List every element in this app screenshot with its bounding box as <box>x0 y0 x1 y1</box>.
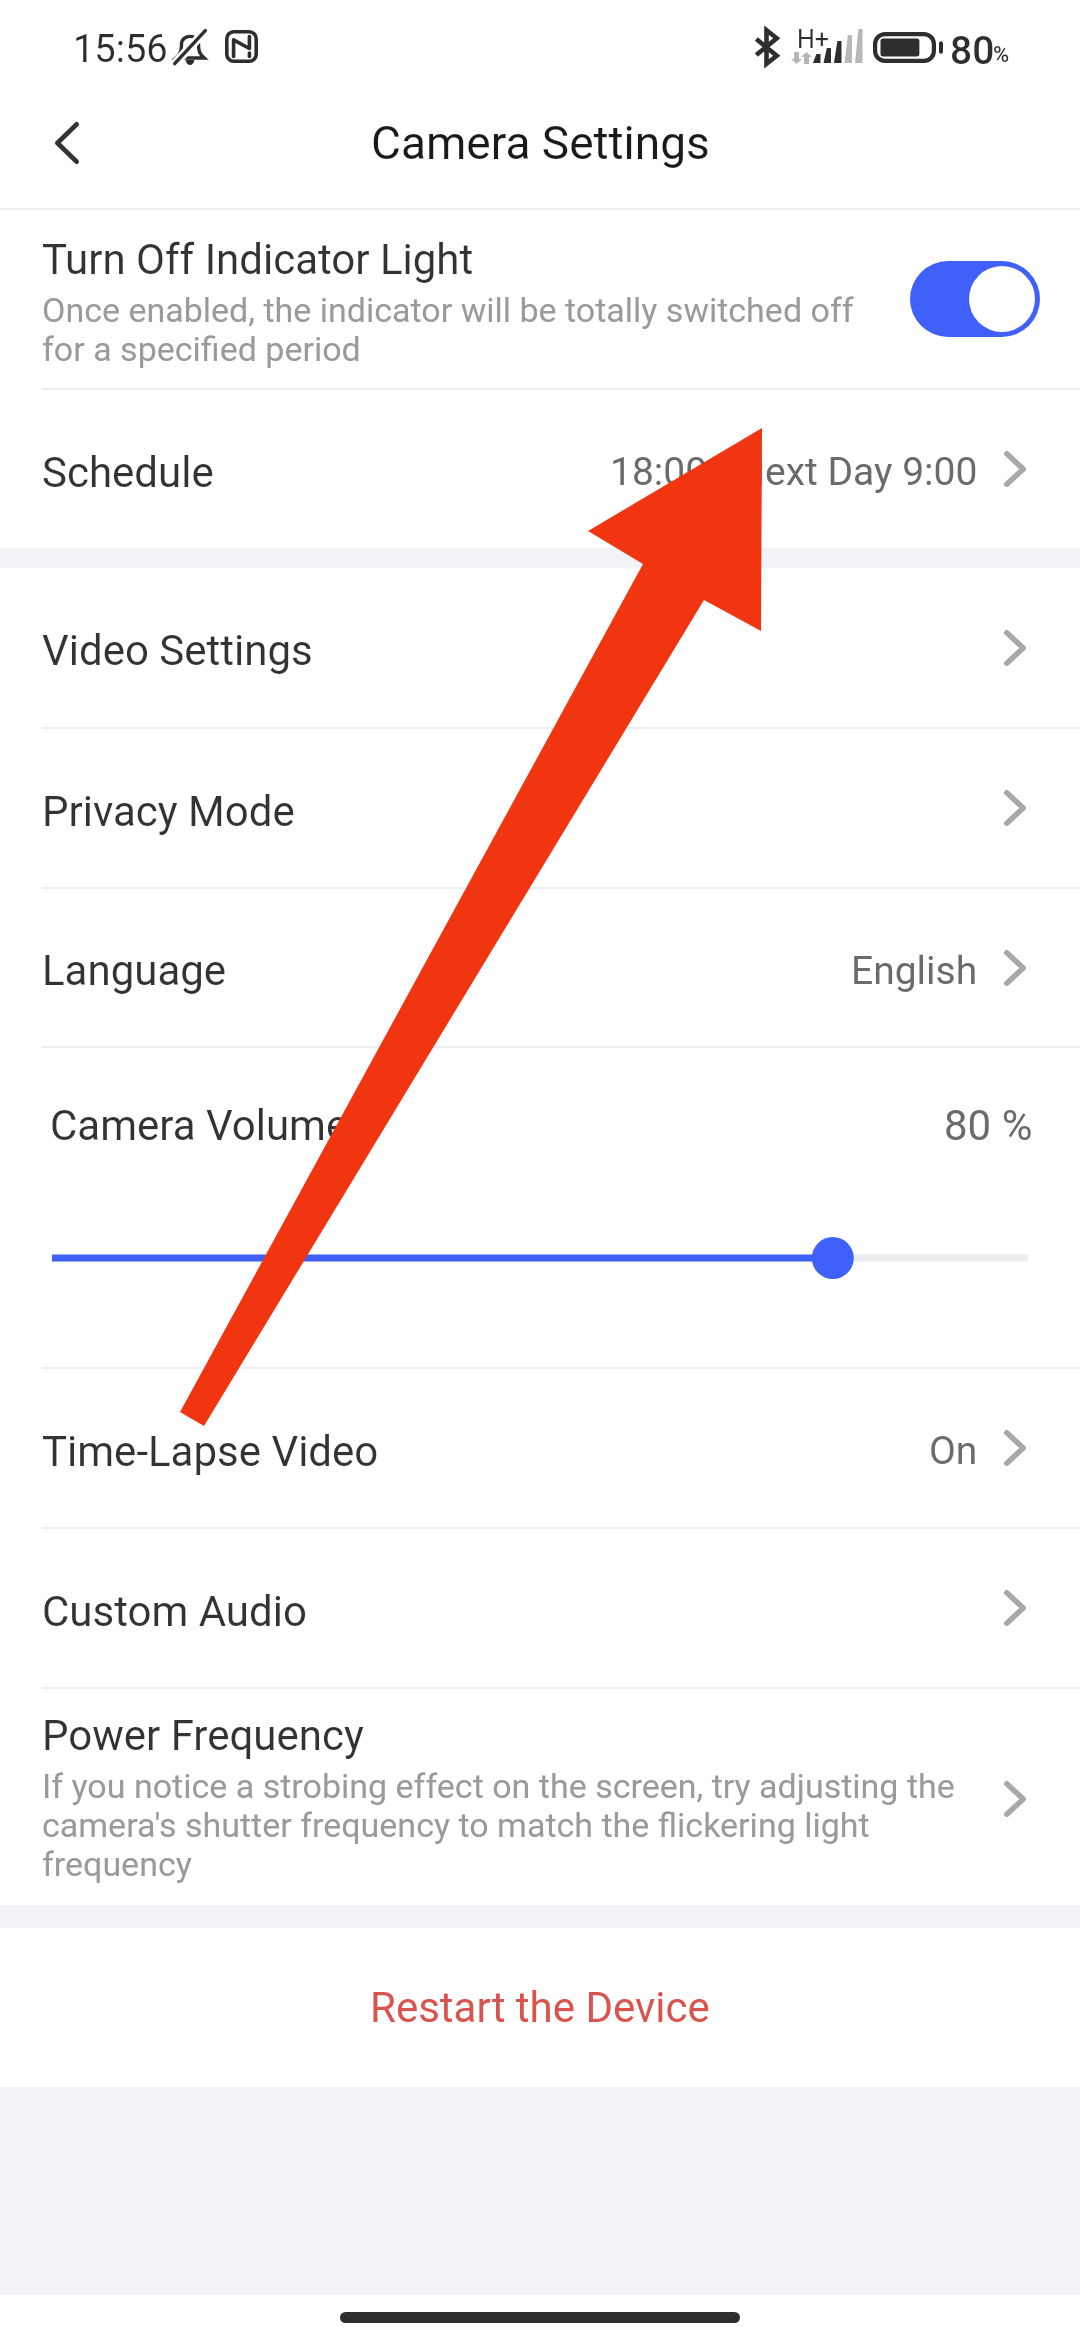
staticText: 18:00 - Next Day 9:00 <box>610 449 978 495</box>
button[interactable]: Turn Off Indicator Light <box>0 210 1080 388</box>
staticText: Schedule <box>42 448 214 497</box>
button[interactable]: Video Settings <box>0 568 1080 727</box>
staticText: Custom Audio <box>42 1587 307 1636</box>
button[interactable]: Schedule <box>0 390 1080 548</box>
button[interactable]: Back <box>36 112 98 174</box>
button[interactable]: Privacy Mode <box>0 729 1080 887</box>
staticText: Turn Off Indicator Light <box>42 235 474 284</box>
staticText: If you notice a strobing effect on the s… <box>42 1766 967 1884</box>
staticText: Video Settings <box>42 626 313 675</box>
staticText: 80 <box>950 28 995 74</box>
button[interactable]: Camera volume slider <box>52 1235 1028 1281</box>
button[interactable]: Custom Audio <box>0 1529 1080 1687</box>
staticText: Power Frequency <box>42 1711 364 1760</box>
button[interactable]: Language <box>0 889 1080 1046</box>
staticText: Restart the Device <box>370 1983 710 2032</box>
button[interactable]: Restart the Device <box>0 1928 1080 2087</box>
staticText: Once enabled, the indicator will be tota… <box>42 290 872 369</box>
staticText: Language <box>42 946 227 995</box>
staticText: Camera Volume <box>50 1101 349 1150</box>
button[interactable]: Turn off indicator light toggle <box>910 261 1040 337</box>
staticText: Privacy Mode <box>42 787 295 836</box>
button[interactable]: Power Frequency <box>0 1689 1080 1905</box>
staticText: % <box>993 42 1010 68</box>
staticText: English <box>851 948 978 994</box>
button[interactable]: Time-Lapse Video <box>0 1369 1080 1527</box>
staticText: Time-Lapse Video <box>42 1427 379 1476</box>
staticText: 80 % <box>944 1101 1033 1150</box>
staticText: 15:56 <box>73 27 168 72</box>
staticText: Camera Settings <box>371 116 710 170</box>
staticText: On <box>929 1428 978 1474</box>
staticText: H+ <box>797 25 830 54</box>
